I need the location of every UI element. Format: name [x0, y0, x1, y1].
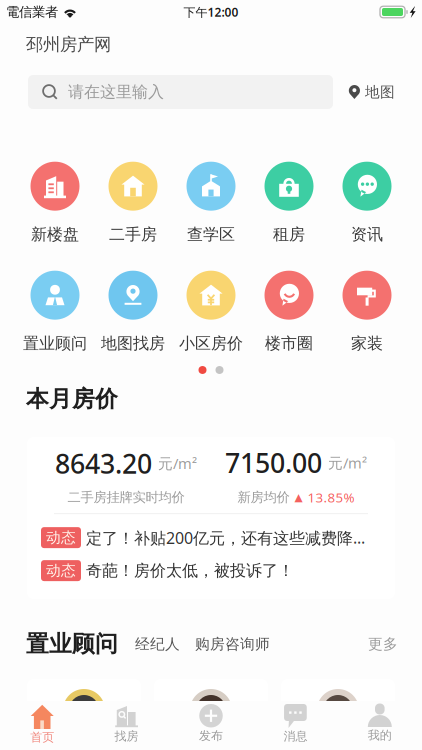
button[interactable]: 家装 [328, 272, 406, 352]
staticText: 元/m² [328, 453, 367, 472]
button[interactable]: 经纪人 [135, 635, 180, 653]
staticText: 下午12:00 [183, 4, 238, 20]
button[interactable] [281, 679, 395, 750]
staticText: 消息 [283, 729, 307, 744]
button[interactable]: 消息 [253, 701, 338, 750]
staticText: 请在这里输入 [68, 82, 164, 102]
staticText: 二手房挂牌实时均价 [67, 489, 184, 505]
staticText: 找房 [115, 729, 139, 744]
staticText: 7150.00 [225, 445, 322, 480]
staticText: 置业顾问 [26, 630, 118, 658]
button[interactable]: 动态 [41, 560, 381, 581]
staticText: 查学区 [187, 225, 235, 244]
button[interactable]: 地图找房 [94, 272, 172, 352]
button[interactable] [27, 679, 141, 750]
button[interactable]: 租房 [250, 163, 328, 243]
staticText: 更多 [368, 635, 398, 653]
button[interactable]: 新楼盘 [16, 163, 94, 243]
staticText: 资讯 [351, 225, 383, 244]
staticText: 13.85% [307, 488, 354, 506]
staticText: 二手房 [109, 225, 157, 244]
button[interactable]: 查学区 [172, 163, 250, 243]
button[interactable]: 动态 [41, 527, 381, 548]
button[interactable]: 首页 [0, 701, 84, 750]
staticText: 楼市圈 [265, 334, 313, 353]
staticText: 8643.20 [55, 446, 152, 481]
staticText: 電信業者 [6, 4, 58, 20]
staticText: 奇葩！房价太低，被投诉了！ [86, 561, 294, 580]
button[interactable]: 更多 [368, 635, 398, 653]
staticText: 我的 [368, 728, 392, 743]
staticText: 定了！补贴200亿元，还有这些减费降税… [86, 527, 376, 548]
staticText: 购房咨询师 [195, 635, 270, 653]
button[interactable]: 地图 [349, 75, 395, 109]
staticText: 地图找房 [101, 334, 165, 353]
staticText: 新房均价 [237, 489, 289, 505]
button[interactable]: 置业顾问 [16, 272, 94, 352]
button[interactable]: 小区房价 [172, 272, 250, 352]
staticText: 小区房价 [179, 334, 243, 353]
button[interactable]: 找房 [84, 701, 169, 750]
button[interactable]: 购房咨询师 [195, 635, 270, 653]
staticText: 首页 [30, 730, 54, 745]
staticText: ▲ [294, 491, 302, 503]
button[interactable]: 楼市圈 [250, 272, 328, 352]
staticText: 动态 [46, 562, 76, 580]
staticText: 动态 [46, 529, 76, 547]
staticText: 地图 [365, 83, 395, 101]
staticText: 家装 [351, 334, 383, 353]
button[interactable]: 资讯 [328, 163, 406, 243]
button[interactable]: 我的 [338, 701, 422, 750]
staticText: 置业顾问 [23, 334, 87, 353]
staticText: 元/m² [158, 454, 197, 473]
button[interactable]: 二手房 [94, 163, 172, 243]
button[interactable]: 发布 [169, 701, 253, 750]
staticText: 发布 [199, 728, 223, 743]
staticText: 本月房价 [26, 385, 118, 413]
staticText: 经纪人 [135, 635, 180, 653]
button[interactable] [154, 679, 268, 750]
button[interactable]: 请在这里输入 [28, 75, 333, 109]
staticText: 租房 [273, 225, 305, 244]
staticText: 新楼盘 [31, 225, 79, 244]
staticText: 邳州房产网 [26, 34, 111, 55]
